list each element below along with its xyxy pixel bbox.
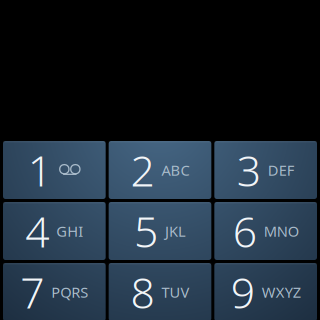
staticText: 3 <box>237 142 261 198</box>
button[interactable]: 4 <box>3 202 106 260</box>
staticText: 6 <box>233 203 257 259</box>
staticText: 1 <box>28 142 52 198</box>
staticText: MNO <box>264 221 299 241</box>
staticText: JKL <box>165 221 186 241</box>
button[interactable]: 1 <box>3 141 106 199</box>
staticText: 7 <box>20 264 44 320</box>
staticText: 8 <box>130 264 154 320</box>
staticText: 9 <box>231 264 255 320</box>
staticText: GHI <box>56 221 83 241</box>
staticText: 2 <box>130 142 154 198</box>
staticText: 5 <box>134 203 158 259</box>
button[interactable]: 8 <box>109 263 211 320</box>
staticText: 4 <box>25 203 49 259</box>
button[interactable]: 6 <box>214 202 317 260</box>
staticText: WXYZ <box>262 282 301 302</box>
staticText: DEF <box>268 160 295 180</box>
button[interactable]: 3 <box>214 141 317 199</box>
staticText: TUV <box>161 282 189 302</box>
button[interactable]: 2 <box>109 141 211 199</box>
button[interactable]: 9 <box>214 263 317 320</box>
button[interactable]: 7 <box>3 263 106 320</box>
staticText: PQRS <box>51 282 88 302</box>
button[interactable]: 5 <box>109 202 211 260</box>
staticText: ABC <box>161 160 189 180</box>
